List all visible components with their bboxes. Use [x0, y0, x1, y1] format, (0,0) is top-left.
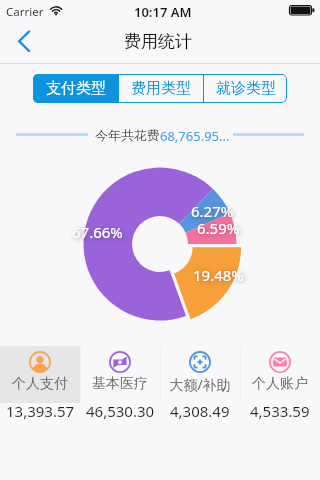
button[interactable]: 个人账户 [240, 346, 320, 403]
staticText: 今年共花费 [95, 127, 160, 143]
staticText: 46,530.30 [86, 401, 155, 421]
staticText: 10:17 AM [134, 3, 192, 21]
staticText: 费用统计 [124, 31, 192, 52]
staticText: 基本医疗 [80, 375, 160, 393]
button[interactable]: 大额/补助 [160, 346, 240, 403]
button[interactable]: 个人支付 [0, 346, 80, 403]
staticText: 个人账户 [240, 375, 320, 393]
button[interactable]: 费用类型 [119, 74, 203, 103]
staticText: 4,308.49 [170, 401, 230, 421]
staticText: 大额/补助 [160, 375, 240, 394]
staticText: Carrier [6, 4, 44, 20]
staticText: 6.59% [197, 218, 240, 238]
button[interactable]: 支付类型 [33, 74, 118, 103]
staticText: 就诊类型 [216, 79, 276, 98]
button[interactable]: Back [6, 25, 40, 59]
staticText: 6.27% [191, 201, 234, 221]
staticText: 4,533.59 [250, 401, 310, 421]
button[interactable]: 基本医疗 [80, 346, 160, 403]
staticText: 13,393.57 [6, 401, 75, 421]
staticText: 个人支付 [0, 375, 80, 393]
button[interactable]: 就诊类型 [204, 74, 287, 103]
staticText: 费用类型 [131, 79, 191, 98]
staticText: 67.66% [72, 222, 123, 242]
staticText: 68,765.95... [160, 127, 230, 145]
staticText: 19.48% [193, 265, 244, 285]
staticText: 支付类型 [46, 79, 106, 98]
